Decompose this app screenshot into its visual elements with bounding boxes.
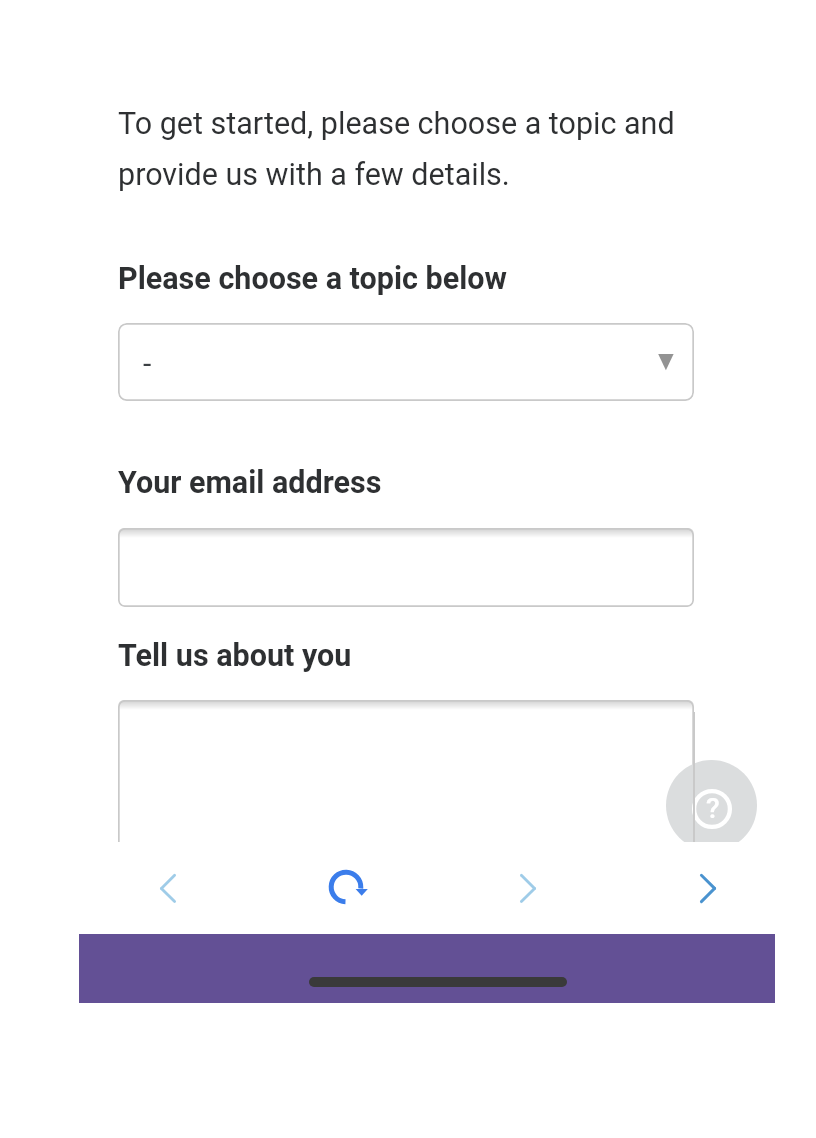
staticText: Your email address <box>118 465 382 501</box>
staticText: Tell us about you <box>118 638 352 674</box>
button[interactable]: Forward <box>504 864 552 912</box>
staticText: Please choose a topic below <box>118 261 507 297</box>
staticText: - <box>143 346 152 381</box>
button[interactable] <box>118 528 694 607</box>
button[interactable]: Reload <box>322 863 370 911</box>
button[interactable]: Help <box>666 760 757 842</box>
staticText: ? <box>706 792 720 825</box>
staticText: To get started, please choose a topic an… <box>118 106 675 193</box>
button[interactable]: - <box>118 323 694 401</box>
button[interactable]: Next <box>684 864 732 912</box>
button[interactable] <box>118 700 694 842</box>
button[interactable]: Back <box>144 864 192 912</box>
